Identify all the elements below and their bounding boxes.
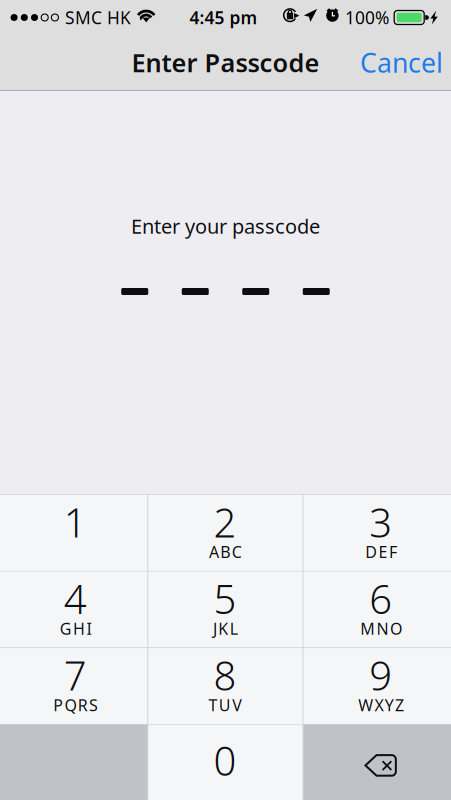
button[interactable]: 5 (148, 571, 303, 647)
staticText: 2 (213, 495, 236, 548)
staticText: SMC HK (65, 6, 131, 29)
staticText: GHI (60, 618, 97, 639)
button[interactable]: Delete (303, 725, 451, 800)
staticText: Enter Passcode (131, 46, 319, 79)
staticText: 7 (64, 648, 87, 702)
staticText: ABC (209, 541, 247, 562)
staticText: 4 (64, 572, 87, 625)
button[interactable]: 7 (0, 648, 147, 724)
staticText: Enter your passcode (131, 213, 320, 239)
staticText: 6 (369, 572, 392, 625)
staticText: Cancel (360, 45, 443, 80)
staticText: PQRS (53, 694, 103, 716)
staticText: MNO (360, 618, 407, 639)
staticText: WXYZ (358, 694, 409, 716)
staticText: 0 (213, 734, 236, 787)
staticText: 3 (369, 495, 392, 548)
staticText: 5 (213, 572, 236, 625)
button[interactable]: 2 (148, 495, 303, 571)
staticText: 8 (213, 648, 236, 702)
button[interactable]: Cancel (348, 35, 451, 90)
button[interactable]: 8 (148, 648, 303, 724)
button[interactable]: 3 (303, 495, 451, 571)
staticText: 1 (64, 495, 87, 548)
staticText: 100% (345, 6, 389, 29)
button[interactable]: 9 (303, 648, 451, 724)
button[interactable]: 0 (148, 725, 303, 800)
staticText: 4:45 pm (189, 6, 257, 29)
button[interactable]: 6 (303, 571, 451, 647)
staticText: JKL (213, 618, 243, 639)
staticText: 9 (369, 648, 392, 702)
staticText: DEF (365, 541, 402, 562)
button[interactable]: 4 (0, 571, 147, 647)
staticText: TUV (209, 694, 247, 716)
button[interactable]: 1 (0, 495, 147, 571)
